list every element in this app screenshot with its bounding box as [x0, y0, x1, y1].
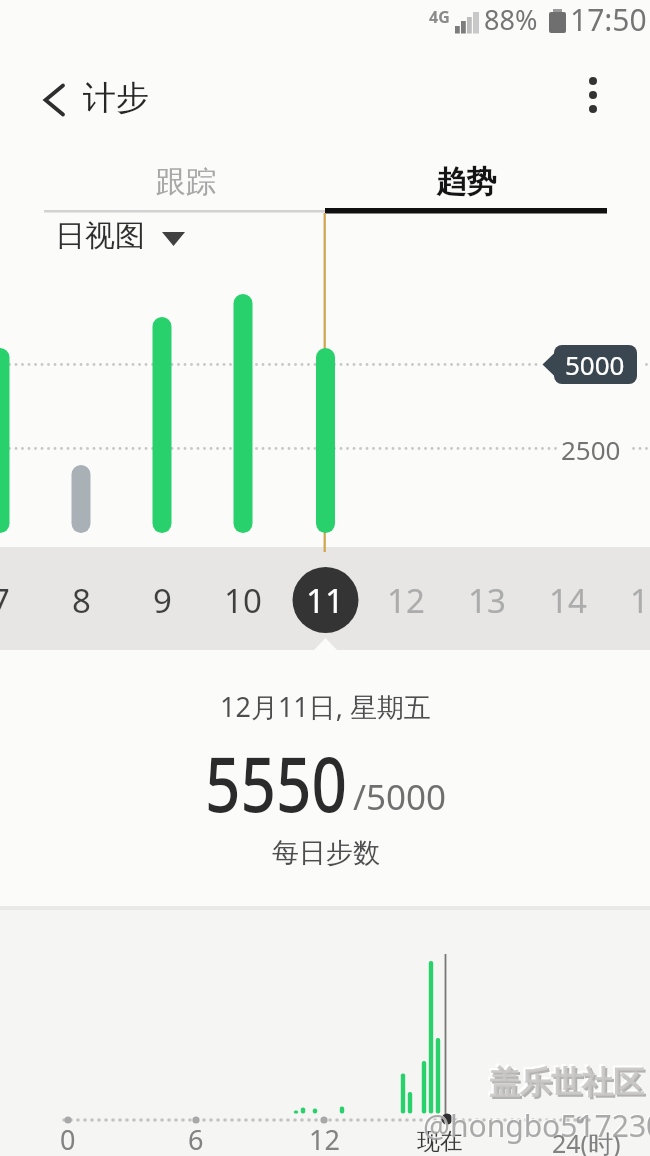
staticText: 12月11日, 星期五	[220, 688, 432, 725]
button[interactable]	[41, 547, 122, 650]
button[interactable]	[446, 547, 527, 650]
staticText: @hongbo517230	[423, 1105, 650, 1146]
staticText: 现在	[417, 1127, 463, 1156]
staticText: 12	[309, 1121, 340, 1156]
staticText: /5000	[353, 773, 447, 821]
staticText: 9	[153, 578, 172, 623]
staticText: 13	[468, 578, 506, 623]
button[interactable]	[527, 547, 608, 650]
staticText: 6	[188, 1121, 204, 1156]
staticText: 日视图	[55, 217, 145, 255]
staticText: 5000	[565, 347, 625, 382]
button[interactable]	[203, 547, 284, 650]
button[interactable]	[28, 70, 76, 120]
button[interactable]	[365, 547, 446, 650]
staticText: 5550	[205, 732, 347, 834]
button[interactable]	[44, 148, 325, 214]
staticText: 14	[549, 578, 587, 623]
staticText: 10	[224, 578, 262, 623]
staticText: 计步	[83, 77, 149, 119]
button[interactable]	[570, 70, 618, 120]
staticText: @hongbo517230	[422, 1104, 650, 1145]
staticText: 趋势	[436, 163, 496, 201]
staticText: 8	[72, 578, 91, 623]
staticText: 4G	[429, 6, 450, 28]
staticText: 17:50	[570, 0, 647, 40]
button[interactable]	[284, 547, 365, 650]
staticText: 7	[0, 578, 10, 623]
staticText: 15	[630, 578, 650, 623]
staticText: 盖乐世社区	[487, 1061, 642, 1100]
staticText: 2500	[561, 432, 621, 467]
staticText: 0	[60, 1121, 76, 1156]
staticText: 88%	[484, 1, 538, 38]
staticText: 盖乐世社区	[491, 1065, 646, 1104]
button[interactable]	[48, 216, 193, 256]
staticText: 24(时)	[552, 1126, 621, 1156]
staticText: 11	[306, 578, 344, 623]
button[interactable]	[122, 547, 203, 650]
button[interactable]	[325, 148, 607, 214]
staticText: 盖乐世社区	[489, 1063, 644, 1102]
staticText: 12	[387, 578, 425, 623]
staticText: 跟踪	[156, 163, 216, 201]
button[interactable]	[608, 547, 650, 650]
staticText: 每日步数	[272, 836, 380, 870]
